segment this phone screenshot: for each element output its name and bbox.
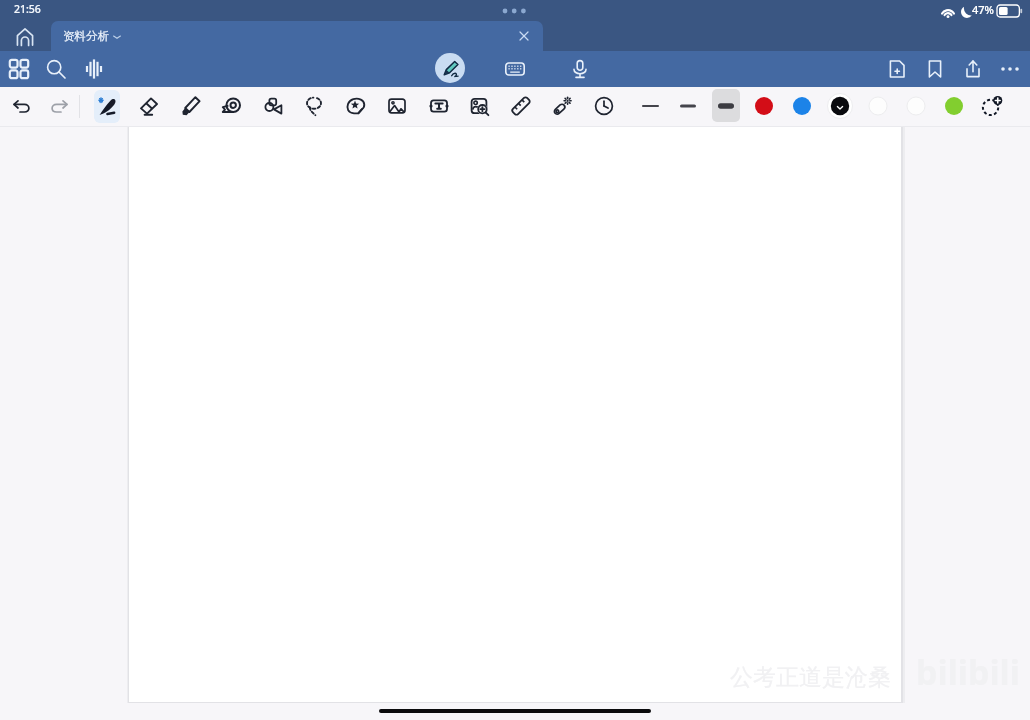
staticText: 47%: [972, 2, 994, 17]
button[interactable]: Add page: [881, 53, 913, 85]
staticText: 资料分析: [63, 29, 109, 43]
button[interactable]: Highlighter: [176, 91, 206, 121]
button[interactable]: Shape: [217, 91, 247, 121]
button[interactable]: Ruler: [506, 91, 536, 121]
button[interactable]: Green: [938, 90, 970, 122]
button[interactable]: Add colour: [976, 90, 1008, 122]
button[interactable]: Close tab: [513, 25, 535, 47]
button[interactable]: Shapes: [258, 91, 288, 121]
button[interactable]: More options: [994, 53, 1026, 85]
button[interactable]: Audio: [78, 53, 110, 85]
button[interactable]: Stroke width: [712, 89, 740, 122]
button[interactable]: Magic: [547, 91, 577, 121]
button[interactable]: Pen tool: [94, 90, 120, 123]
button[interactable]: Home: [9, 21, 41, 53]
button[interactable]: Voice input: [564, 53, 596, 85]
staticText: 公考正道是沧桑: [730, 663, 891, 692]
button[interactable]: Keyboard: [499, 53, 531, 85]
button[interactable]: Bookmark: [919, 53, 951, 85]
button[interactable]: White: [900, 90, 932, 122]
button[interactable]: Recent: [589, 91, 619, 121]
button[interactable]: Pen tool: [92, 91, 122, 121]
button[interactable]: Undo: [7, 91, 37, 121]
button[interactable]: Lasso: [300, 91, 330, 121]
button[interactable]: Redo: [44, 91, 74, 121]
button[interactable]: Text: [424, 91, 454, 121]
button[interactable]: Share: [957, 53, 989, 85]
button[interactable]: 资料分析: [51, 21, 543, 51]
staticText: 21:56: [14, 2, 41, 16]
button[interactable]: Search image: [465, 91, 495, 121]
button[interactable]: Pen: [435, 53, 465, 83]
button[interactable]: Pages: [3, 53, 35, 85]
button[interactable]: Red: [748, 90, 780, 122]
button[interactable]: White: [862, 90, 894, 122]
button[interactable]: Stroke width: [636, 89, 664, 122]
button[interactable]: Eraser: [134, 91, 164, 121]
button[interactable]: Stroke width: [674, 89, 702, 122]
button[interactable]: Sticker: [341, 91, 371, 121]
button[interactable]: Image: [382, 91, 412, 121]
button[interactable]: Search: [40, 53, 72, 85]
button[interactable]: Black, selected: [824, 90, 856, 122]
button[interactable]: Blue: [786, 90, 818, 122]
